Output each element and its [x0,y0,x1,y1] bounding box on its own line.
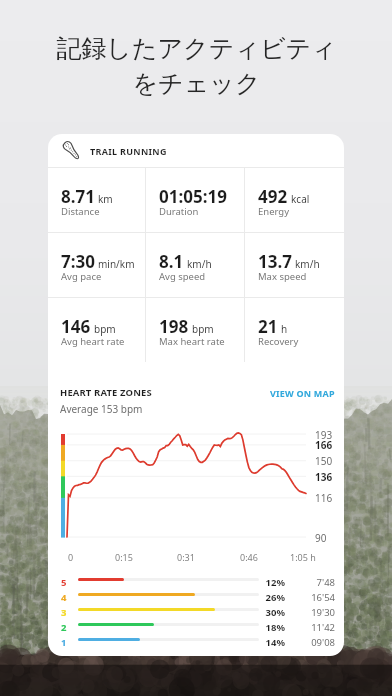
staticText: 7'48 [302,576,335,589]
staticText: 18% [259,621,285,634]
staticText: bpm [192,322,214,336]
other: Trail running [60,139,83,162]
staticText: 19'30 [302,606,335,619]
staticText: 0:31 [177,551,195,562]
button[interactable]: 4 [48,588,344,603]
staticText: 14% [259,636,285,649]
staticText: 198 [159,315,189,338]
staticText: Avg pace [61,270,102,283]
staticText: 11'42 [302,621,335,634]
staticText: 26% [259,591,285,604]
staticText: 30% [259,606,285,619]
staticText: bpm [94,322,116,336]
staticText: VIEW ON MAP [270,387,335,399]
staticText: min/km [98,257,135,271]
staticText: 4 [61,591,67,604]
staticText: Average 153 bpm [60,402,143,416]
staticText: 90 [315,531,327,545]
staticText: 136 [315,470,333,484]
staticText: Max heart rate [159,335,225,348]
staticText: TRAIL RUNNING [90,145,167,157]
staticText: Avg speed [159,270,206,283]
staticText: 1 [61,636,67,649]
staticText: h [281,322,288,336]
staticText: 5 [61,576,67,589]
staticText: km [98,192,113,206]
staticText: 116 [315,491,333,505]
staticText: 2 [61,621,67,634]
staticText: 0 [68,551,74,562]
staticText: Distance [61,205,100,218]
staticText: 1:05 h [290,551,316,562]
staticText: Recovery [258,335,299,348]
staticText: 193 [315,428,333,442]
staticText: 01:05:19 [159,185,227,208]
staticText: 0:46 [240,551,258,562]
staticText: 記録したアクティビティ をチェック [56,33,337,100]
staticText: Avg heart rate [61,335,125,348]
staticText: 8.1 [159,250,184,273]
button[interactable]: VIEW ON MAP [270,387,335,399]
staticText: 150 [315,454,333,468]
staticText: km/h [187,257,212,271]
staticText: 166 [315,438,333,452]
staticText: kcal [291,192,310,206]
staticText: 146 [61,315,91,338]
staticText: HEART RATE ZONES [60,386,152,399]
staticText: Duration [159,205,199,218]
staticText: 8.71 [61,185,95,208]
staticText: 09'08 [302,636,335,649]
button[interactable]: 1 [48,633,344,648]
staticText: 16'54 [302,591,335,604]
staticText: 12% [259,576,285,589]
staticText: 3 [61,606,67,619]
staticText: 13.7 [258,250,292,273]
staticText: 0:15 [115,551,133,562]
staticText: 492 [258,185,288,208]
staticText: Energy [258,205,290,218]
staticText: 21 [258,315,278,338]
staticText: Max speed [258,270,307,283]
button[interactable]: 2 [48,618,344,633]
staticText: km/h [295,257,320,271]
button[interactable]: 3 [48,603,344,618]
staticText: 7:30 [61,250,95,273]
button[interactable]: 5 [48,573,344,588]
